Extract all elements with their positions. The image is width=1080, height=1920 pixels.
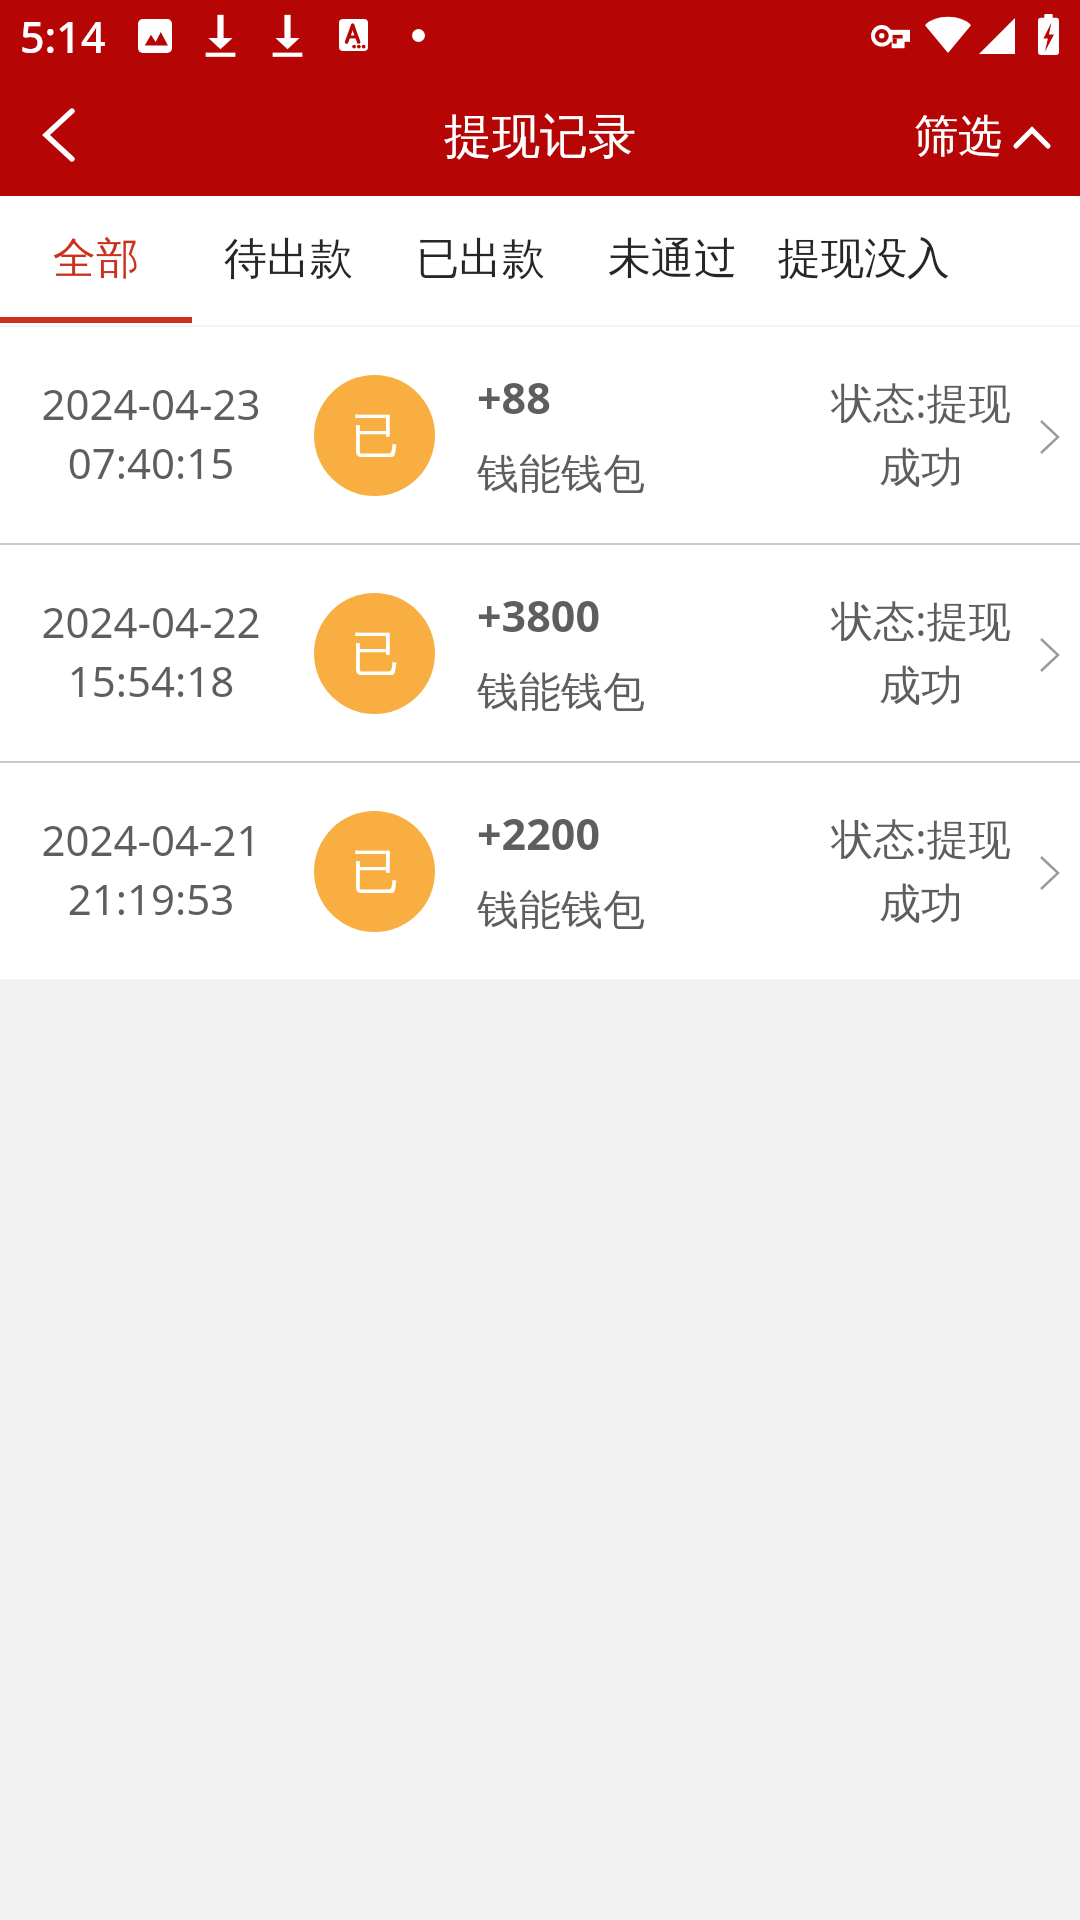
button[interactable]: Back [0,80,116,196]
staticText: 状态:提现 [806,373,1036,430]
staticText: 2024-04-23 [1,375,301,432]
staticText: +88 [477,368,717,427]
staticText: 已 [351,406,399,466]
staticText: 钱能钱包 [477,666,717,719]
button[interactable]: 提现没入 [768,198,960,320]
staticText: 提现记录 [444,107,636,167]
staticText: 07:40:15 [1,434,301,491]
button[interactable]: 2024-04-22 [0,545,1080,761]
staticText: 筛选 [914,109,1002,164]
button[interactable]: 全部 [0,198,192,320]
staticText: 5:14 [20,7,106,66]
button[interactable]: 待出款 [192,198,384,320]
staticText: 状态:提现 [806,809,1036,866]
staticText: 21:19:53 [1,870,301,927]
staticText: 2024-04-21 [1,811,301,868]
staticText: 钱能钱包 [477,448,717,501]
staticText: 成功 [806,442,1036,495]
staticText: 提现没入 [778,232,950,286]
staticText: 钱能钱包 [477,884,717,937]
staticText: 成功 [806,660,1036,713]
button[interactable]: 2024-04-23 [0,327,1080,543]
staticText: 未通过 [608,232,737,286]
button[interactable]: 筛选 [894,80,1058,196]
staticText: 待出款 [224,232,353,286]
staticText: 已 [351,842,399,902]
staticText: 15:54:18 [1,652,301,709]
button[interactable]: 未通过 [576,198,768,320]
button[interactable]: 已出款 [384,198,576,320]
staticText: 全部 [53,232,139,286]
staticText: +3800 [477,586,717,645]
staticText: 2024-04-22 [1,593,301,650]
staticText: 状态:提现 [806,591,1036,648]
button[interactable]: 2024-04-21 [0,763,1080,979]
staticText: +2200 [477,804,717,863]
staticText: 已出款 [416,232,545,286]
staticText: 已 [351,624,399,684]
staticText: 成功 [806,878,1036,931]
